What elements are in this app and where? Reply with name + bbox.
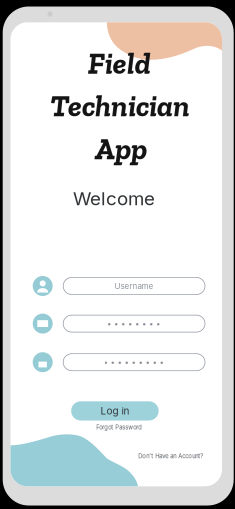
button[interactable]: • • • • • • • • • <box>63 354 205 371</box>
button[interactable]: • • • • • • • • <box>63 315 205 332</box>
staticText: Don't Have an Account? <box>138 453 203 460</box>
staticText: Welcome <box>73 187 155 210</box>
staticText: • • • • • • • • • <box>104 357 165 367</box>
button[interactable]: Password <box>33 352 53 372</box>
staticText: Username <box>115 281 154 291</box>
button[interactable]: Log in <box>71 401 159 420</box>
staticText: Log in <box>100 405 129 417</box>
staticText: • • • • • • • • <box>107 319 161 328</box>
staticText: Technician <box>50 87 190 124</box>
staticText: Forgot Password <box>96 424 142 431</box>
button[interactable]: Forgot Password <box>96 424 142 431</box>
button[interactable]: Email <box>33 314 53 334</box>
staticText: App <box>95 130 147 167</box>
button[interactable]: Username <box>63 277 205 294</box>
staticText: Field <box>88 45 151 81</box>
button[interactable]: Don't Have an Account? <box>138 453 203 460</box>
button[interactable]: Username <box>33 276 53 296</box>
